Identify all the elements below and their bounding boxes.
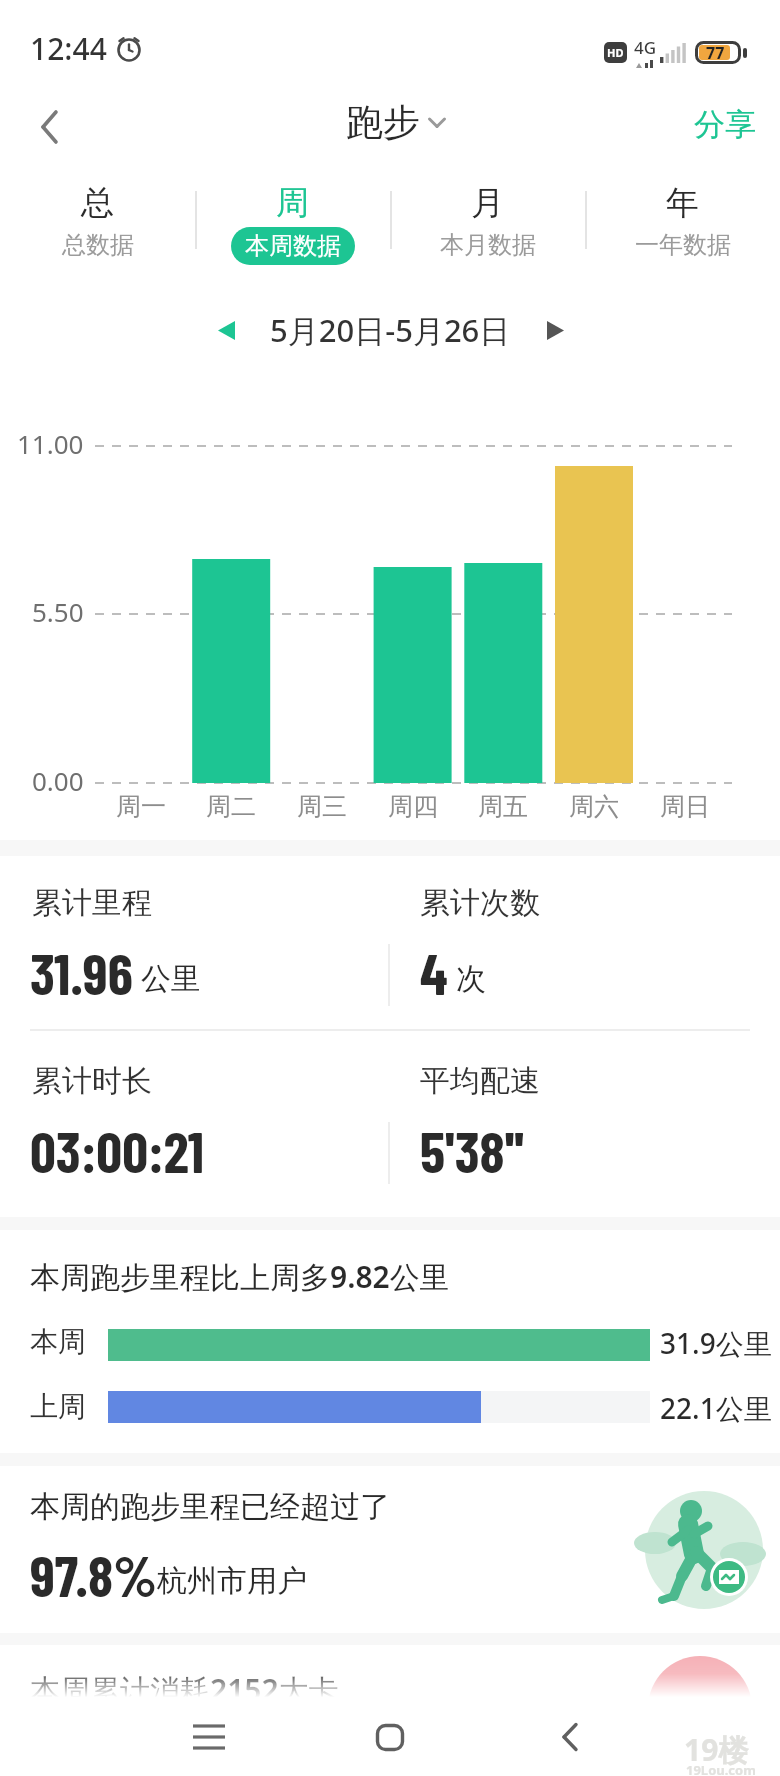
staticText: 97.8% [30, 1540, 157, 1608]
staticText: 本周的跑步里程已经超过了 [30, 1488, 390, 1526]
staticText: 周三 [297, 791, 347, 822]
staticText: 19楼 [684, 1729, 749, 1770]
staticText: 本周跑步里程比上周多9.82公里 [30, 1256, 450, 1297]
staticText: 平均配速 [420, 1062, 540, 1100]
button[interactable] [185, 1713, 233, 1761]
button[interactable]: 周 [195, 182, 390, 265]
staticText: 19Lou.com [686, 1761, 756, 1776]
staticText: 5月20日-5月26日 [270, 309, 511, 351]
staticText: 31.96 [30, 938, 133, 1006]
staticText: 周二 [206, 791, 256, 822]
button[interactable]: 总 [0, 182, 195, 263]
staticText: 分享 [694, 105, 756, 144]
staticText: 年 [666, 182, 699, 224]
staticText: 一年数据 [635, 230, 731, 260]
staticText: 31.9公里 [660, 1324, 772, 1362]
staticText: 总数据 [62, 230, 134, 260]
button[interactable] [206, 310, 246, 350]
staticText: 5.50 [32, 594, 84, 629]
staticText: 4 [420, 938, 448, 1006]
staticText: 杭州市用户 [157, 1562, 307, 1600]
staticText: 5'38'' [420, 1116, 525, 1184]
button[interactable] [546, 1713, 594, 1761]
staticText: 11.00 [17, 426, 84, 461]
staticText: 月 [471, 182, 504, 224]
button[interactable]: 分享 [690, 101, 760, 147]
button[interactable]: 跑步 [346, 99, 446, 146]
staticText: 公里 [141, 960, 201, 998]
staticText: 总 [81, 182, 114, 224]
staticText: 周四 [388, 791, 438, 822]
button[interactable] [535, 310, 575, 350]
button[interactable]: 月 [390, 182, 585, 263]
button[interactable]: 年 [585, 182, 780, 263]
staticText: 77 [706, 42, 725, 64]
staticText: 累计里程 [32, 884, 152, 922]
staticText: 跑步 [346, 99, 420, 146]
staticText: 周日 [660, 791, 710, 822]
staticText: 周 [276, 182, 309, 224]
staticText: 22.1公里 [660, 1389, 772, 1427]
staticText: 周一 [116, 791, 166, 822]
button[interactable] [366, 1713, 414, 1761]
staticText: 累计次数 [420, 884, 540, 922]
button[interactable] [28, 105, 72, 149]
staticText: 上周 [30, 1389, 86, 1424]
staticText: 4G [634, 36, 657, 59]
staticText: 本周累计消耗2152大卡 [30, 1669, 339, 1710]
staticText: 03:00:21 [30, 1116, 205, 1184]
staticText: 0.00 [32, 763, 84, 798]
staticText: HD [607, 45, 624, 60]
staticText: 本月数据 [440, 230, 536, 260]
staticText: 次 [456, 960, 486, 998]
staticText: 周六 [569, 791, 619, 822]
staticText: 累计时长 [32, 1062, 152, 1100]
staticText: 本周 [30, 1324, 86, 1359]
staticText: 周五 [478, 791, 528, 822]
staticText: 本周数据 [245, 231, 341, 261]
staticText: 12:44 [30, 28, 107, 69]
